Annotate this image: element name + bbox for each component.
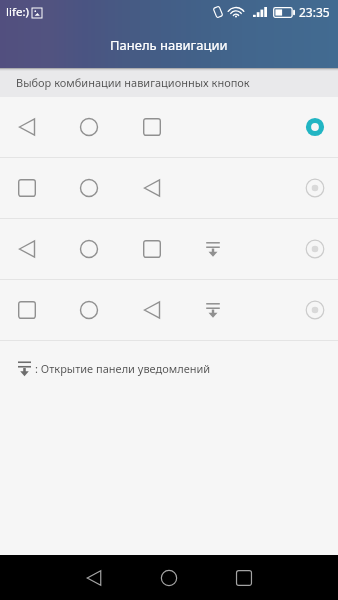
staticText: Панель навигации [110,36,228,54]
staticText: 23:35 [299,4,330,20]
button[interactable]: Home [147,556,191,600]
button[interactable]: Recent apps [222,556,266,600]
staticText: Выбор комбинации навигационных кнопок [16,75,250,90]
button[interactable] [0,280,338,340]
button[interactable] [0,219,338,279]
button[interactable] [0,158,338,218]
button[interactable] [0,97,338,157]
staticText: life:) [6,4,29,20]
staticText: : Открытие панели уведомлений [35,361,211,376]
button[interactable]: Back [72,556,116,600]
